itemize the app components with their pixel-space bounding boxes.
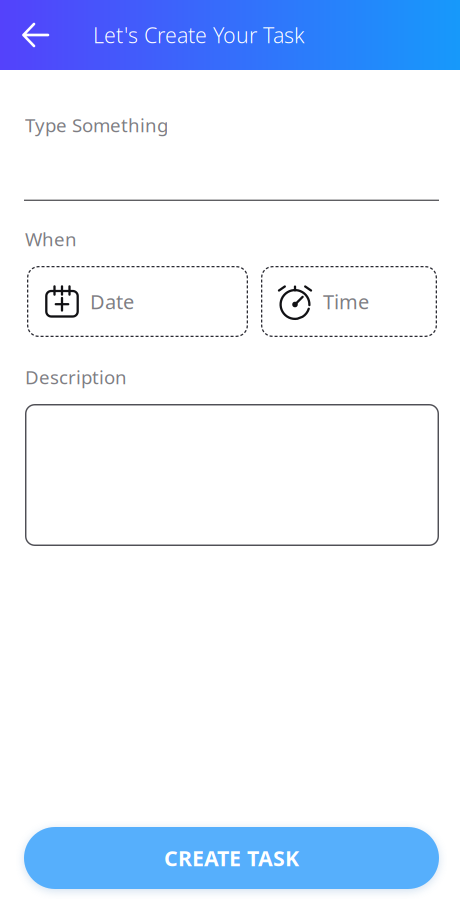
staticText: Description <box>25 365 127 389</box>
staticText: Date <box>90 288 134 315</box>
button[interactable]: CREATE TASK <box>24 827 439 889</box>
button[interactable]: Back <box>0 0 71 70</box>
staticText: Time <box>323 288 369 315</box>
button[interactable]: Type Something <box>24 94 439 201</box>
staticText: When <box>25 227 77 251</box>
staticText: Let's Create Your Task <box>93 21 305 49</box>
button[interactable]: Time <box>261 266 437 337</box>
staticText: CREATE TASK <box>164 844 299 872</box>
staticText: Type Something <box>25 113 168 137</box>
button[interactable]: Date <box>27 266 248 337</box>
button[interactable]: Description <box>25 404 439 546</box>
